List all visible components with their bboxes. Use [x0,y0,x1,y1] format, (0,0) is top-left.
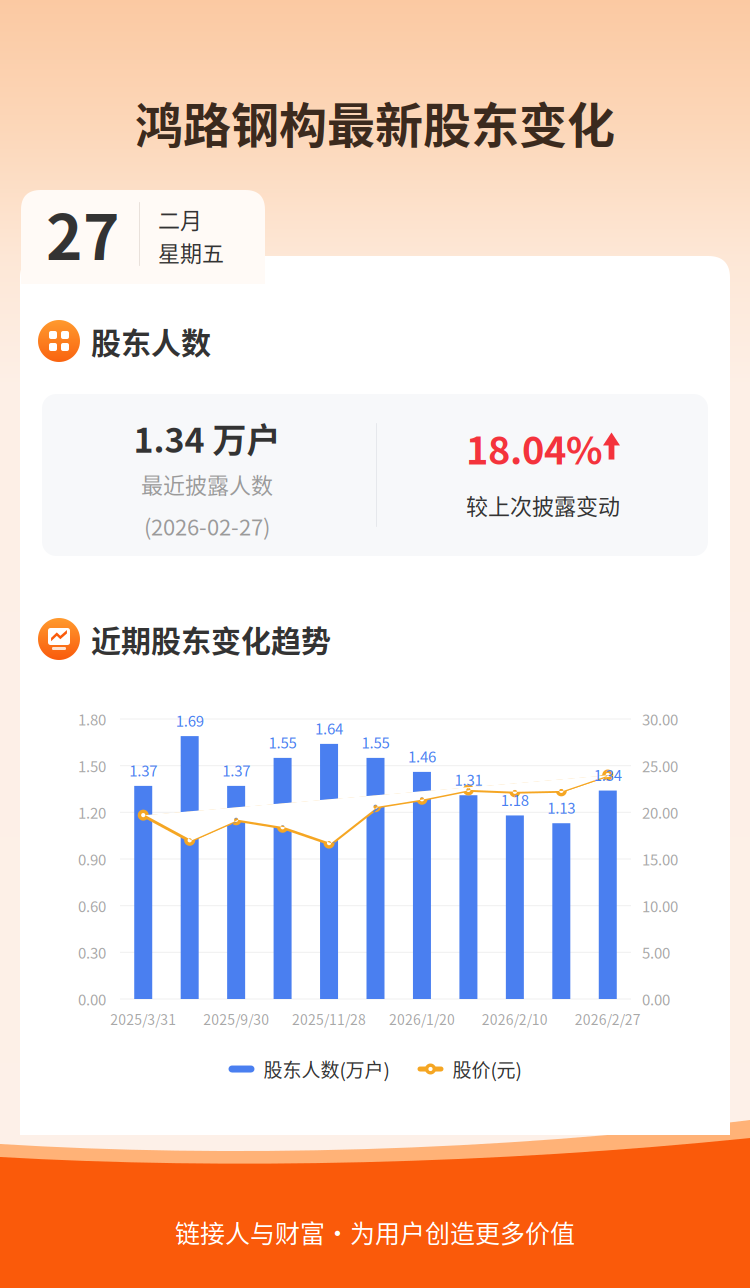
staticText: 15.00 [642,848,678,870]
staticText: 0.30 [78,941,106,963]
staticText: 1.31 [454,768,482,790]
staticText: 链接人与财富·为用户创造更多价值 [175,1214,575,1250]
staticText: 二月 [158,203,202,235]
staticText: 1.34 [594,764,622,785]
staticText: 2026/2/10 [482,1009,548,1029]
staticText: 近期股东变化趋势 [91,617,331,661]
staticText: 1.64 [315,717,343,739]
staticText: 5.00 [642,941,670,963]
staticText: 1.37 [222,759,250,781]
staticText: 0.00 [78,988,106,1010]
staticText: 30.00 [642,708,678,730]
staticText: 1.20 [78,801,106,823]
staticText: 1.46 [408,745,436,767]
staticText: 星期五 [158,236,224,268]
staticText: 2025/11/28 [292,1009,366,1029]
staticText: 1.55 [269,731,297,753]
staticText: 1.55 [361,731,389,753]
staticText: 0.00 [642,988,670,1010]
staticText: 股东人数 [91,319,211,363]
staticText: 股东人数(万户) [263,1055,389,1083]
staticText: 0.90 [78,848,106,870]
staticText: 1.80 [78,708,106,730]
staticText: 2026/1/20 [389,1009,455,1029]
staticText: 18.04% [466,420,603,475]
staticText: 1.18 [501,789,529,810]
staticText: 1.50 [78,755,106,776]
staticText: 1.69 [176,709,204,731]
staticText: 0.60 [78,895,106,916]
staticText: 鸿路钢构最新股东变化 [135,87,615,157]
staticText: 2025/9/30 [203,1009,269,1029]
staticText: (2026-02-27) [144,510,270,542]
staticText: 2025/3/31 [110,1009,176,1029]
staticText: 27 [46,188,120,278]
staticText: 1.37 [129,759,157,781]
staticText: 10.00 [642,895,678,916]
staticText: 最近披露人数 [141,468,273,500]
staticText: 股价(元) [452,1055,521,1083]
staticText: 20.00 [642,801,678,823]
staticText: 2026/2/27 [575,1009,641,1029]
staticText: 1.13 [547,796,575,818]
staticText: 1.34 万户 [133,413,280,463]
staticText: 25.00 [642,755,678,776]
staticText: 较上次披露变动 [466,489,620,521]
